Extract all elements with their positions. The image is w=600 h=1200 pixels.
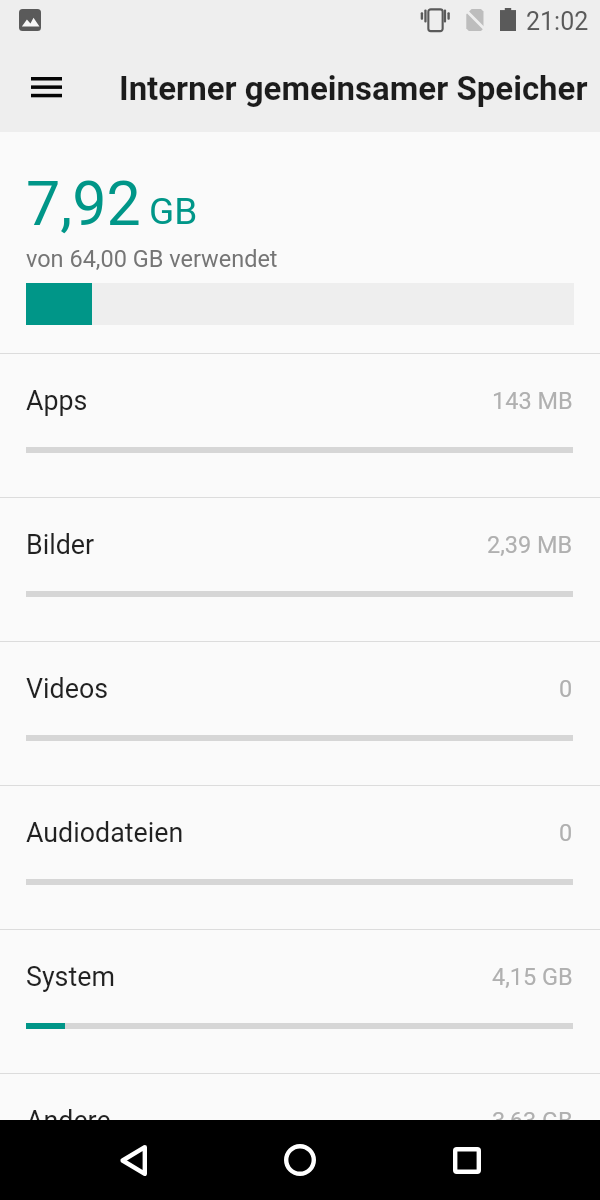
button[interactable]: Apps (0, 353, 600, 497)
staticText: Audiodateien (26, 817, 184, 848)
staticText: Apps (26, 385, 88, 416)
staticText: von 64,00 GB verwendet (26, 245, 278, 273)
staticText: System (26, 961, 115, 992)
staticText: 0 (559, 675, 573, 703)
staticText: 7,92 (26, 168, 141, 239)
staticText: Videos (26, 673, 109, 704)
button[interactable]: System (0, 929, 600, 1073)
button[interactable]: Videos (0, 641, 600, 785)
staticText: 3,63 GB (492, 1107, 573, 1135)
staticText: 4,15 GB (492, 963, 573, 991)
button[interactable]: Back (93, 1125, 173, 1195)
staticText: 143 MB (492, 387, 573, 415)
button[interactable]: Menu (16, 59, 76, 119)
staticText: Andere (26, 1105, 111, 1136)
staticText: 2,39 MB (487, 531, 573, 559)
staticText: Interner gemeinsamer Speicher (119, 69, 588, 108)
staticText: 21:02 (526, 7, 589, 36)
button[interactable]: Bilder (0, 497, 600, 641)
button[interactable]: Andere (0, 1073, 600, 1200)
button[interactable]: Audiodateien (0, 785, 600, 929)
button[interactable]: Home (260, 1125, 340, 1195)
staticText: GB (149, 190, 198, 233)
button[interactable]: Recent apps (427, 1125, 507, 1195)
staticText: Bilder (26, 529, 95, 560)
staticText: 0 (559, 819, 573, 847)
